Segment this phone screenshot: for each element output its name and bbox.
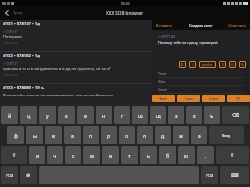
staticText: э (198, 132, 201, 139)
staticText: в (52, 132, 55, 139)
button[interactable]: ш (132, 106, 148, 124)
button[interactable]: я (29, 146, 45, 164)
staticText: ш (138, 112, 143, 119)
button[interactable]: % (239, 61, 246, 68)
staticText: >>078137 (3, 61, 19, 65)
button[interactable]: #132 • 078182 • 1д (0, 52, 152, 83)
staticText: а (71, 132, 74, 139)
staticText: у (46, 112, 49, 119)
button[interactable]: Вставить (155, 22, 174, 29)
staticText: spoiler (202, 63, 213, 67)
button[interactable]: л (137, 126, 153, 144)
button[interactable]: OP (227, 95, 250, 102)
staticText: U (231, 63, 234, 67)
button[interactable]: т (121, 146, 138, 164)
staticText: г (121, 112, 124, 119)
staticText: ⇧ (12, 152, 17, 158)
button[interactable]: #133 • 078089 • 19 ч. (0, 84, 152, 103)
button[interactable]: д (155, 126, 171, 144)
staticText: >>077132 (158, 34, 175, 39)
staticText: Имя (158, 79, 166, 84)
button[interactable]: в (45, 126, 62, 144)
staticText: Ответить (3, 72, 18, 76)
button[interactable]: г (114, 106, 130, 124)
button[interactable]: з (168, 106, 184, 124)
staticText: Email (158, 87, 167, 92)
button[interactable]: ю (178, 146, 195, 164)
button[interactable]: ?123 (1, 166, 18, 184)
button[interactable]: Ввод (209, 126, 244, 144)
button[interactable]: Back (0, 6, 14, 20)
button[interactable]: б (159, 146, 176, 164)
button[interactable]: о (119, 126, 135, 144)
staticText: ⊕ (26, 172, 31, 178)
staticText: Сажа (185, 97, 193, 101)
button[interactable]: Отменить (227, 22, 247, 29)
staticText: ч (53, 152, 57, 159)
staticText: ⇧ (230, 152, 235, 158)
button[interactable]: е (77, 106, 94, 124)
staticText: й (8, 112, 12, 119)
staticText: р (107, 132, 111, 139)
button[interactable]: у (39, 106, 56, 124)
button[interactable]: ц (20, 106, 37, 124)
button[interactable]: i (189, 61, 196, 68)
button[interactable]: #131 • 078137 • 1д (0, 20, 152, 51)
button[interactable]: S (219, 61, 226, 68)
button[interactable]: Backspace (222, 106, 249, 124)
staticText: ⌨ (231, 172, 239, 178)
staticText: 05:32 (121, 1, 130, 6)
staticText: к (65, 112, 68, 119)
button[interactable]: х (186, 106, 202, 124)
staticText: и (109, 152, 113, 159)
button[interactable]: к (58, 106, 75, 124)
staticText: ц (27, 112, 31, 119)
staticText: Почему тебе за сдачу, проверяй (158, 40, 218, 45)
staticText: х (193, 112, 196, 119)
button[interactable]: ?123 (201, 166, 218, 184)
staticText: о (125, 132, 129, 139)
button[interactable]: . (197, 146, 214, 164)
staticText: OP (236, 97, 241, 101)
button[interactable]: ы (26, 126, 43, 144)
button[interactable]: а (64, 126, 81, 144)
button[interactable]: й (1, 106, 18, 124)
button[interactable]: и (102, 146, 119, 164)
staticText: н (102, 112, 106, 119)
button[interactable]: Language (20, 166, 37, 184)
staticText: Создать пост (189, 23, 213, 28)
button[interactable]: ч (47, 146, 63, 164)
button[interactable]: Shift (216, 146, 249, 164)
button[interactable]: Опрос (202, 95, 225, 102)
button[interactable]: э (191, 126, 207, 144)
button[interactable]: Shift (1, 146, 27, 164)
button[interactable]: Сажа (177, 95, 200, 102)
button[interactable]: п (83, 126, 99, 144)
button[interactable]: spoiler (199, 61, 216, 68)
button[interactable]: Hide keyboard (220, 166, 249, 184)
button[interactable]: н (96, 106, 112, 124)
staticText: B (181, 63, 184, 67)
staticText: д (161, 132, 165, 139)
button[interactable]: ж (173, 126, 189, 144)
button[interactable]: р (101, 126, 117, 144)
button[interactable]: ф (7, 126, 24, 144)
staticText: . (205, 152, 207, 159)
staticText: #132 • 078182 • 1д (3, 53, 40, 59)
staticText: п (89, 132, 93, 139)
button[interactable]: с (65, 146, 81, 164)
button[interactable]: U (229, 61, 236, 68)
staticText: Отменить (228, 23, 246, 28)
button[interactable]: м (83, 146, 100, 164)
button[interactable]: Создать пост (188, 22, 214, 29)
staticText: е (84, 112, 87, 119)
button[interactable]: щ (150, 106, 166, 124)
staticText: #131 • 078137 • 1д (3, 21, 40, 27)
button[interactable]: ъ (204, 106, 220, 124)
button[interactable]: B (179, 61, 186, 68)
button[interactable]: Файл (152, 95, 175, 102)
button[interactable]: ь (140, 146, 157, 164)
staticText: причем в тс и в загружается в и дд не гр… (3, 66, 111, 71)
staticText: л (143, 132, 147, 139)
